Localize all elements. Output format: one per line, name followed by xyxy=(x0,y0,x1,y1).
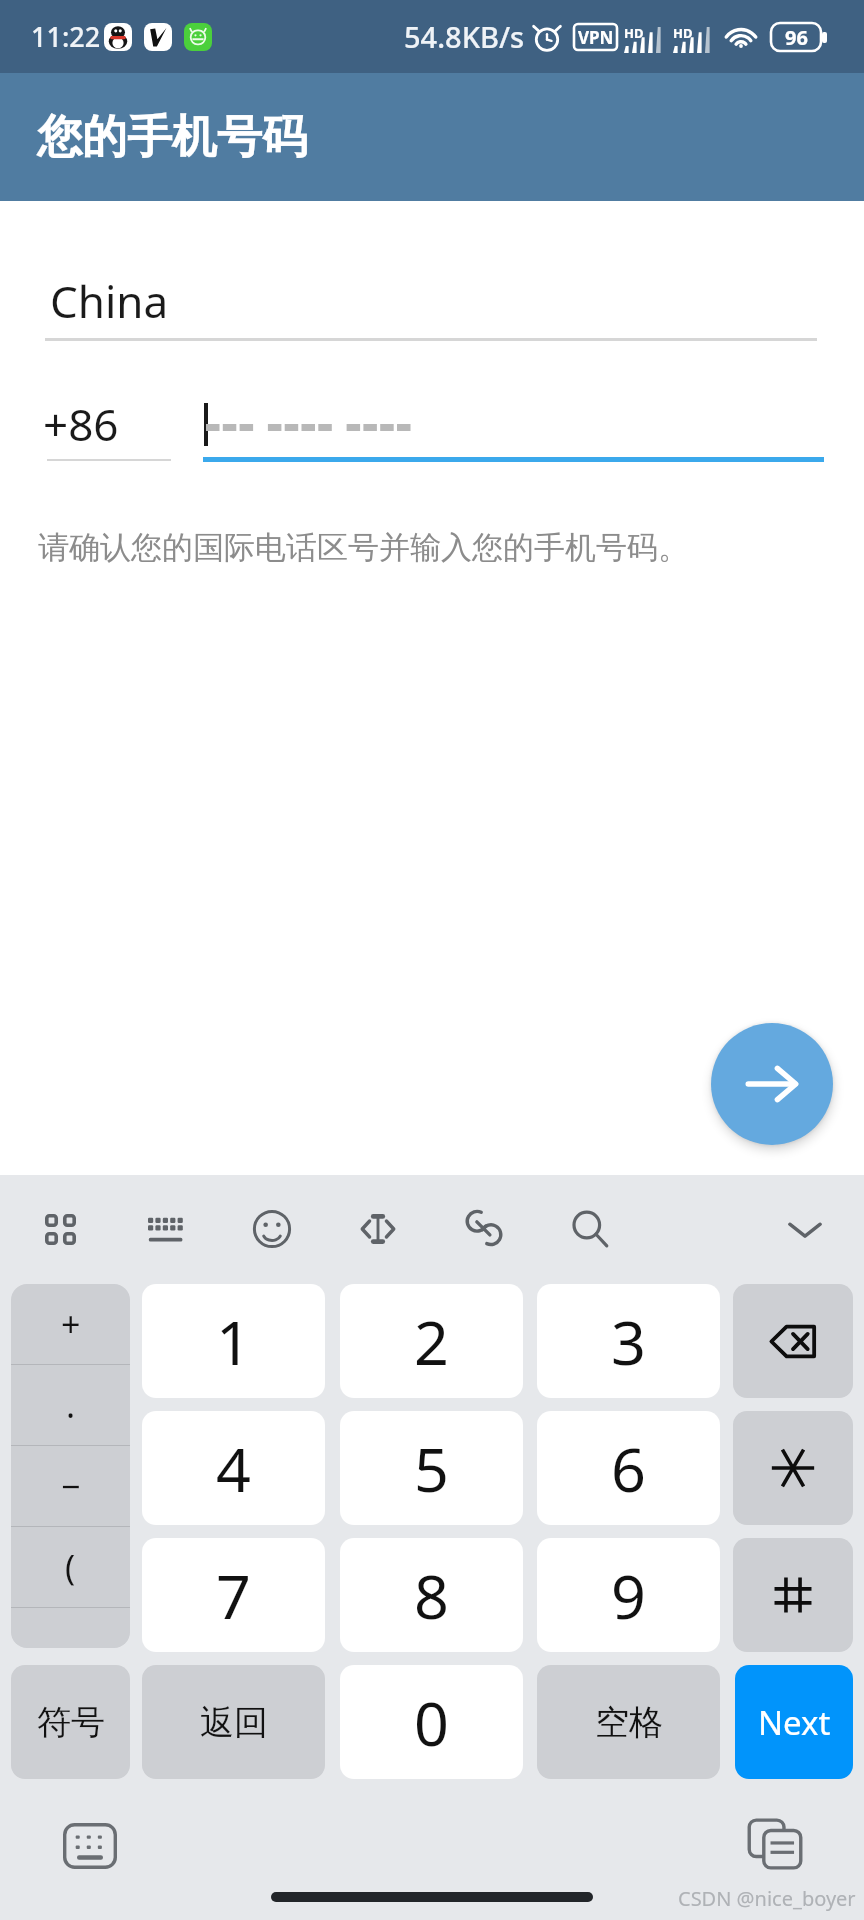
staticText: 请确认您的国际电话区号并输入您的手机号码。 xyxy=(38,528,689,567)
staticText: 9 xyxy=(611,1554,646,1637)
staticText: VPN xyxy=(578,26,614,49)
button[interactable]: Star xyxy=(733,1411,853,1525)
staticText: 6 xyxy=(611,1427,646,1510)
staticText: CSDN @nice_boyer xyxy=(678,1885,856,1912)
staticText: 96 xyxy=(785,24,808,51)
button[interactable]: 1 xyxy=(142,1284,325,1398)
button[interactable]: 2 xyxy=(340,1284,523,1398)
button[interactable]: + xyxy=(11,1284,130,1364)
staticText: 您的手机号码 xyxy=(37,109,307,166)
button[interactable]: Text edit xyxy=(352,1203,404,1255)
button[interactable]: 6 xyxy=(537,1411,720,1525)
button[interactable]: ( xyxy=(11,1527,130,1607)
staticText: Next xyxy=(758,1700,831,1745)
staticText: HD xyxy=(624,24,644,42)
staticText: 3 xyxy=(611,1300,646,1383)
button[interactable]: − xyxy=(11,1446,130,1526)
button[interactable] xyxy=(11,1608,130,1648)
staticText: HD xyxy=(673,24,693,42)
button[interactable]: 5 xyxy=(340,1411,523,1525)
button[interactable]: 7 xyxy=(142,1538,325,1652)
button[interactable] xyxy=(202,386,826,462)
staticText: 空格 xyxy=(595,1701,663,1744)
button[interactable]: Backspace xyxy=(733,1284,853,1398)
button[interactable]: Hide keyboard xyxy=(779,1203,831,1255)
button[interactable]: 8 xyxy=(340,1538,523,1652)
staticText: 11:22 xyxy=(31,18,101,55)
button[interactable]: Clipboard xyxy=(458,1203,510,1255)
button[interactable]: 返回 xyxy=(142,1665,325,1779)
staticText: 8 xyxy=(414,1554,449,1637)
staticText: − xyxy=(61,1463,81,1509)
staticText: 返回 xyxy=(200,1701,268,1744)
staticText: 1 xyxy=(216,1300,251,1383)
staticText: 2 xyxy=(414,1300,449,1383)
button[interactable]: 符号 xyxy=(11,1665,130,1779)
staticText: 5 xyxy=(414,1427,449,1510)
button[interactable]: 空格 xyxy=(537,1665,720,1779)
button[interactable]: Clipboard xyxy=(735,1809,815,1879)
staticText: 0 xyxy=(414,1681,449,1764)
staticText: 符号 xyxy=(37,1701,105,1744)
button[interactable]: China xyxy=(44,261,820,341)
staticText: 7 xyxy=(216,1554,251,1637)
button[interactable]: Keyboard xyxy=(142,1203,194,1255)
button[interactable]: Next xyxy=(711,1023,833,1145)
button[interactable]: 4 xyxy=(142,1411,325,1525)
button[interactable]: Apps xyxy=(34,1203,86,1255)
staticText: . xyxy=(66,1382,76,1428)
button[interactable]: Hash xyxy=(733,1538,853,1652)
staticText: ( xyxy=(65,1544,76,1590)
button[interactable]: 3 xyxy=(537,1284,720,1398)
button[interactable]: +86 xyxy=(40,386,174,462)
staticText: 4 xyxy=(216,1427,251,1510)
button[interactable]: Switch keyboard xyxy=(52,1813,128,1879)
staticText: + xyxy=(61,1301,81,1347)
button[interactable]: Emoji xyxy=(246,1203,298,1255)
staticText: +86 xyxy=(43,394,119,454)
button[interactable]: Search xyxy=(564,1203,616,1255)
button[interactable]: 0 xyxy=(340,1665,523,1779)
button[interactable]: Next xyxy=(735,1665,853,1779)
button[interactable]: 9 xyxy=(537,1538,720,1652)
staticText: 54.8KB/s xyxy=(404,17,525,56)
button[interactable]: . xyxy=(11,1365,130,1445)
staticText: China xyxy=(50,271,169,331)
